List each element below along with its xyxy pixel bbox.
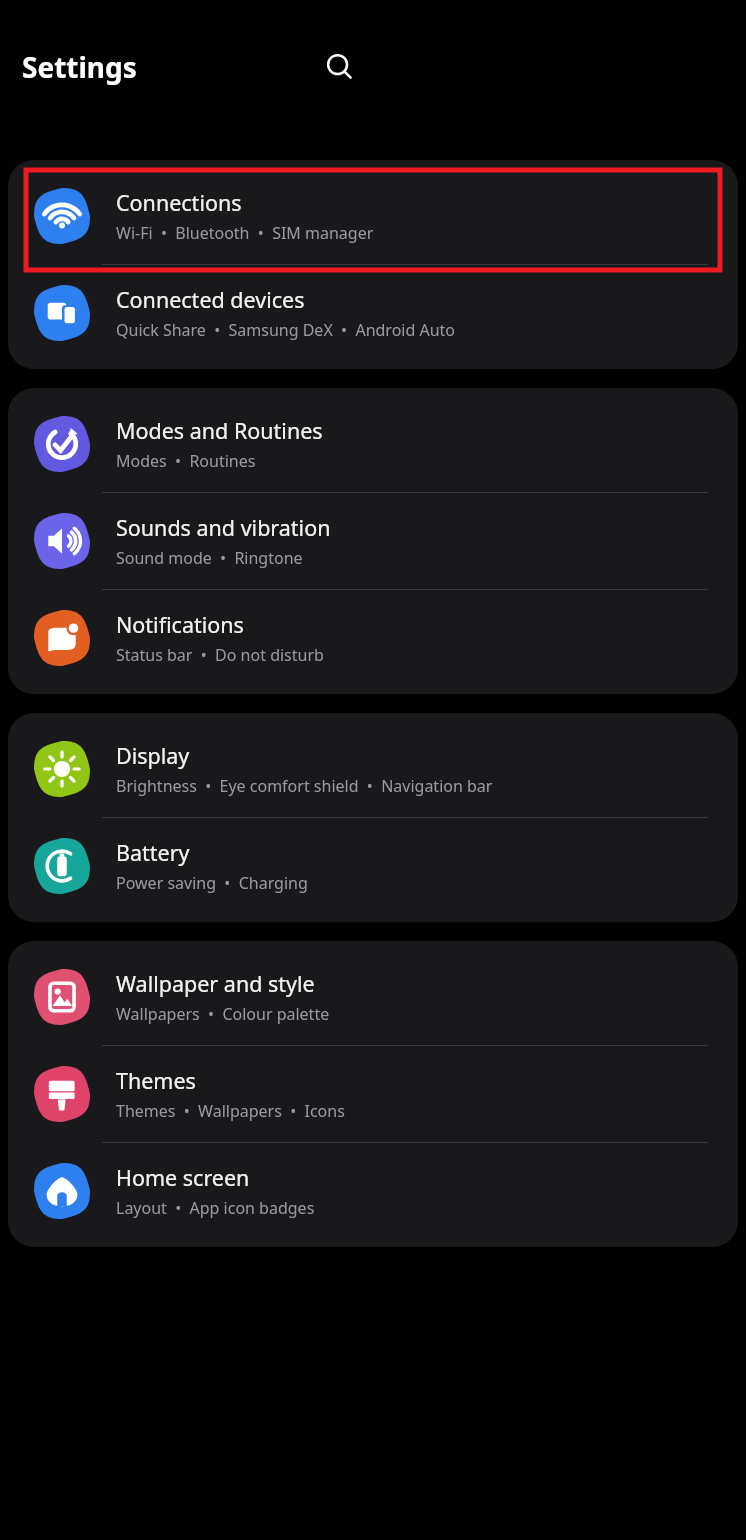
staticText: Battery [116, 838, 190, 867]
button[interactable]: Wallpaper and style [8, 949, 738, 1045]
button[interactable]: Display [8, 721, 738, 817]
staticText: Modes and Routines [116, 416, 323, 445]
button[interactable]: Sounds and vibration [8, 493, 738, 589]
staticText: Settings [22, 48, 137, 86]
staticText: Power saving • Charging [116, 872, 308, 894]
button[interactable]: Themes [8, 1046, 738, 1142]
staticText: Connected devices [116, 285, 305, 314]
staticText: Display [116, 741, 190, 770]
staticText: Status bar • Do not disturb [116, 644, 324, 666]
staticText: Brightness • Eye comfort shield • Naviga… [116, 775, 493, 797]
staticText: Themes • Wallpapers • Icons [116, 1100, 345, 1122]
staticText: Quick Share • Samsung DeX • Android Auto [116, 319, 456, 341]
staticText: Wi-Fi • Bluetooth • SIM manager [116, 222, 374, 244]
staticText: Themes [116, 1066, 196, 1095]
button[interactable]: Search [312, 39, 368, 95]
staticText: Sound mode • Ringtone [116, 547, 303, 569]
staticText: Connections [116, 188, 242, 217]
staticText: Wallpapers • Colour palette [116, 1003, 330, 1025]
button[interactable]: Modes and Routines [8, 396, 738, 492]
button[interactable]: Notifications [8, 590, 738, 686]
button[interactable]: Connected devices [8, 265, 738, 361]
button[interactable]: Connections [8, 168, 738, 264]
staticText: Notifications [116, 610, 244, 639]
staticText: Modes • Routines [116, 450, 256, 472]
button[interactable]: Battery [8, 818, 738, 914]
button[interactable]: Home screen [8, 1143, 738, 1239]
staticText: Layout • App icon badges [116, 1197, 315, 1219]
staticText: Wallpaper and style [116, 969, 315, 998]
staticText: Home screen [116, 1163, 250, 1192]
staticText: Sounds and vibration [116, 513, 331, 542]
